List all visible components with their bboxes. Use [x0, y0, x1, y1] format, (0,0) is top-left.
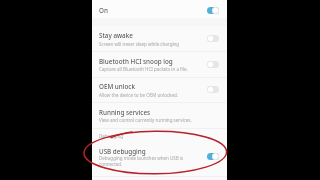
staticText: Debugging — [99, 133, 124, 139]
button[interactable] — [92, 0, 227, 18]
staticText: Running services — [99, 108, 151, 117]
button[interactable]: Switch off — [207, 61, 219, 68]
staticText: Allow the device to be OEM unlocked. — [99, 92, 178, 98]
button[interactable] — [92, 144, 227, 172]
button[interactable] — [92, 51, 227, 77]
staticText: On — [99, 6, 108, 15]
button[interactable] — [92, 77, 227, 103]
button[interactable]: Switch off — [207, 35, 219, 42]
staticText: OEM unlock — [99, 82, 135, 91]
staticText: Debugging mode launches when USB is conn… — [99, 155, 184, 167]
button[interactable]: Switch on — [207, 7, 219, 14]
staticText: Capture all Bluetooth HCI packets in a f… — [99, 66, 188, 72]
button[interactable] — [92, 102, 227, 128]
button[interactable] — [92, 26, 227, 52]
staticText: Stay awake — [99, 31, 133, 40]
staticText: USB debugging — [99, 147, 146, 156]
staticText: Screen will never sleep while charging — [99, 41, 180, 47]
staticText: View and control currently running servi… — [99, 117, 192, 123]
button[interactable]: Switch off — [207, 86, 219, 93]
staticText: Bluetooth HCI snoop log — [99, 57, 173, 66]
button[interactable]: Switch on — [207, 153, 219, 160]
